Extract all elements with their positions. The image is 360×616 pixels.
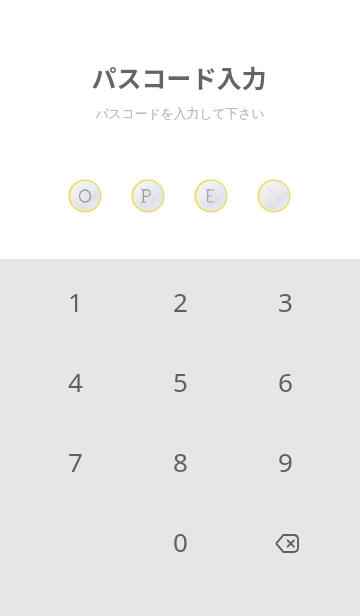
button[interactable]: 0	[128, 501, 233, 581]
staticText: 0	[173, 524, 188, 559]
button[interactable]: 1	[23, 261, 128, 341]
staticText: 9	[278, 444, 293, 479]
staticText: 1	[68, 284, 83, 319]
staticText: 2	[173, 284, 188, 319]
button[interactable]: 4	[23, 341, 128, 421]
staticText: 3	[278, 284, 293, 319]
staticText: 7	[68, 444, 83, 479]
button[interactable]: 7	[23, 421, 128, 501]
button[interactable]: 6	[233, 341, 338, 421]
button[interactable]: 2	[128, 261, 233, 341]
staticText: 5	[173, 364, 188, 399]
staticText: パスコードを入力して下さい	[95, 106, 265, 122]
staticText: 8	[173, 444, 188, 479]
staticText: 6	[278, 364, 293, 399]
staticText: パスコード入力	[91, 59, 267, 95]
button[interactable]: Backspace	[233, 501, 338, 581]
button[interactable]: 9	[233, 421, 338, 501]
button[interactable]: 5	[128, 341, 233, 421]
staticText: 4	[68, 364, 83, 399]
button[interactable]: 3	[233, 261, 338, 341]
button[interactable]: 8	[128, 421, 233, 501]
